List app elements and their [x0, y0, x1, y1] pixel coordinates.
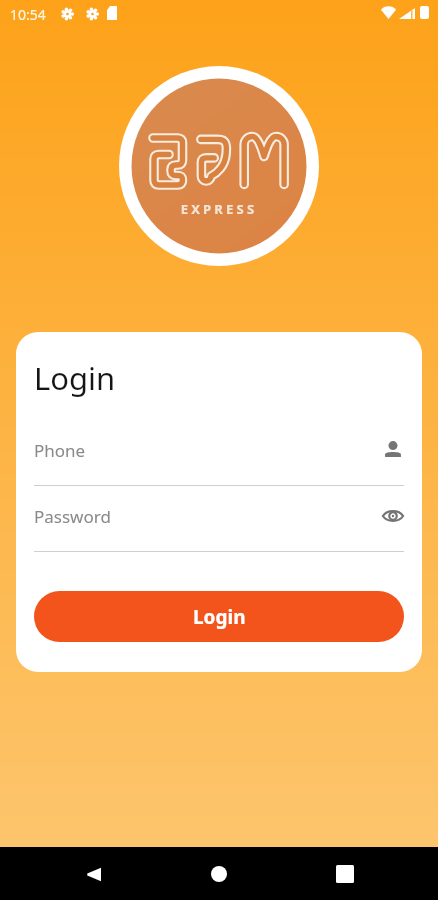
- other: Show password: [382, 505, 404, 527]
- staticText: EXPRESS: [119, 200, 319, 218]
- button[interactable]: Login: [34, 591, 404, 642]
- button[interactable]: Back: [68, 850, 116, 898]
- staticText: Login: [34, 357, 116, 399]
- staticText: Login: [193, 604, 246, 630]
- staticText: Phone: [34, 439, 86, 462]
- staticText: Password: [34, 505, 111, 528]
- button[interactable]: Password: [34, 503, 404, 552]
- button[interactable]: Home: [195, 850, 243, 898]
- other: Account: [382, 439, 404, 461]
- staticText: 10:54: [10, 5, 46, 24]
- button[interactable]: Phone: [34, 437, 404, 486]
- button[interactable]: Recent apps: [321, 850, 369, 898]
